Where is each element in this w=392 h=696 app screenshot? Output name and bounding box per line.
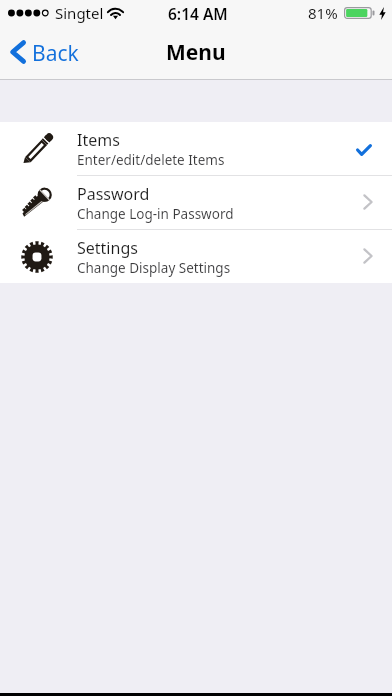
other: More <box>363 194 373 210</box>
staticText: Settings <box>77 237 138 259</box>
staticText: 81% <box>308 3 338 23</box>
button[interactable]: Settings <box>0 230 392 283</box>
staticText: Back <box>32 39 79 68</box>
staticText: Menu <box>166 38 226 67</box>
staticText: Enter/edit/delete Items <box>77 151 225 169</box>
button[interactable]: Items <box>0 122 392 175</box>
button[interactable]: Password <box>0 176 392 229</box>
staticText: 6:14 AM <box>168 3 228 24</box>
other: More <box>363 248 373 264</box>
staticText: Password <box>77 183 150 205</box>
staticText: Singtel <box>55 3 104 23</box>
button[interactable]: Back <box>0 31 93 76</box>
other: Selected <box>356 144 372 156</box>
staticText: Items <box>77 129 120 151</box>
staticText: Change Display Settings <box>77 259 231 277</box>
staticText: Change Log-in Password <box>77 205 234 223</box>
